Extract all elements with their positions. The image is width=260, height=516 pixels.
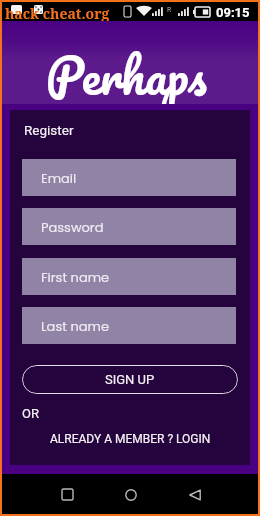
staticText: SIGN UP [105,372,155,387]
staticText: Register [24,122,74,138]
button[interactable]: Back [179,479,211,511]
staticText: Password [41,218,104,236]
button[interactable]: Password [41,208,236,245]
staticText: hack cheat.org [5,4,110,23]
staticText: 09:15 [216,5,250,20]
staticText: R [167,6,172,14]
button[interactable]: Home [115,479,147,511]
button[interactable]: First name [41,258,236,295]
staticText: OR [22,406,39,421]
staticText: Email [41,169,77,187]
button[interactable]: ALREADY A MEMBER ? LOGIN [10,430,250,447]
button[interactable]: SIGN UP [22,365,238,394]
button[interactable]: Last name [41,307,236,344]
staticText: Perhaps [46,34,207,117]
staticText: First name [41,268,110,286]
button[interactable]: Email [41,159,236,196]
button[interactable]: Recents [52,479,82,509]
staticText: Last name [41,317,109,335]
staticText: ALREADY A MEMBER ? LOGIN [50,432,211,446]
